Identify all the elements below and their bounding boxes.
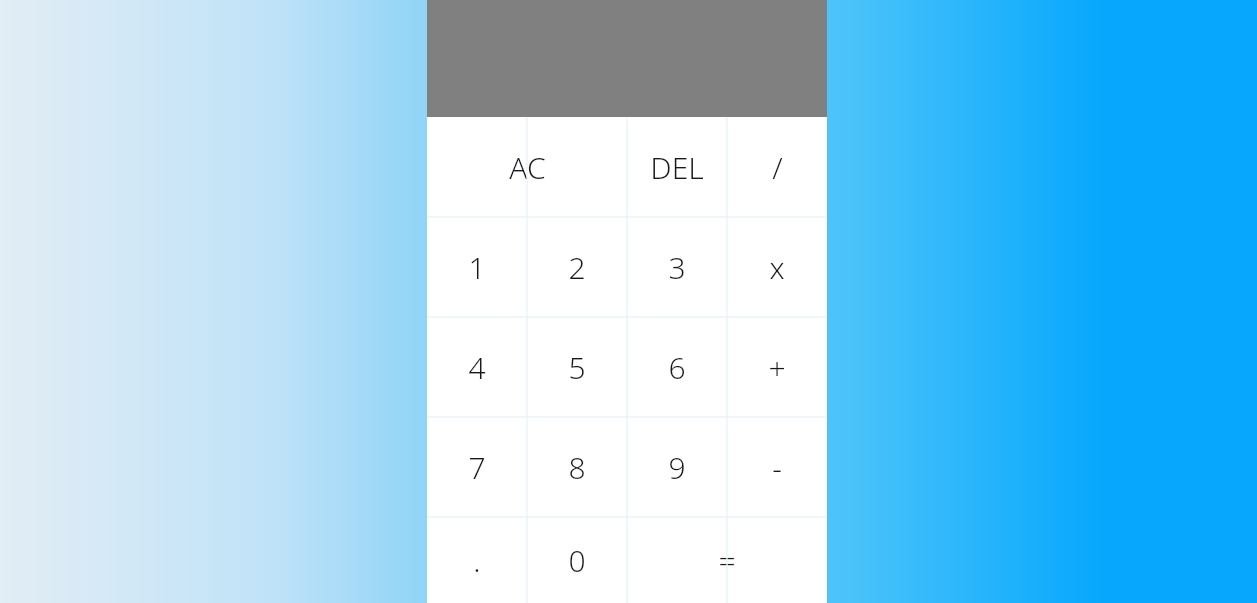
button[interactable]: AC bbox=[427, 117, 627, 217]
staticText: = bbox=[718, 540, 736, 581]
staticText: . bbox=[473, 540, 481, 581]
staticText: - bbox=[772, 447, 782, 488]
staticText: 2 bbox=[568, 247, 586, 288]
button[interactable]: 4 bbox=[427, 317, 527, 417]
button[interactable]: 8 bbox=[527, 417, 627, 517]
staticText: + bbox=[768, 347, 786, 388]
button[interactable]: = bbox=[627, 517, 827, 603]
button[interactable]: 1 bbox=[427, 217, 527, 317]
staticText: 4 bbox=[468, 347, 486, 388]
staticText: 8 bbox=[568, 447, 586, 488]
staticText: 0 bbox=[568, 540, 586, 581]
staticText: 9 bbox=[668, 447, 686, 488]
button[interactable]: 6 bbox=[627, 317, 727, 417]
staticText: 7 bbox=[468, 447, 486, 488]
button[interactable]: . bbox=[427, 517, 527, 603]
button[interactable]: 3 bbox=[627, 217, 727, 317]
button[interactable]: 0 bbox=[527, 517, 627, 603]
button[interactable]: 9 bbox=[627, 417, 727, 517]
staticText: 3 bbox=[668, 247, 686, 288]
staticText: 5 bbox=[568, 347, 586, 388]
button[interactable]: DEL bbox=[627, 117, 727, 217]
staticText: AC bbox=[509, 147, 546, 188]
button[interactable]: 2 bbox=[527, 217, 627, 317]
button[interactable]: - bbox=[727, 417, 827, 517]
button[interactable]: 7 bbox=[427, 417, 527, 517]
button[interactable]: + bbox=[727, 317, 827, 417]
staticText: / bbox=[772, 147, 783, 188]
button[interactable]: / bbox=[727, 117, 827, 217]
staticText: 1 bbox=[468, 247, 486, 288]
button[interactable]: x bbox=[727, 217, 827, 317]
button[interactable]: 5 bbox=[527, 317, 627, 417]
staticText: x bbox=[769, 247, 785, 288]
staticText: 6 bbox=[668, 347, 686, 388]
staticText: DEL bbox=[650, 147, 704, 188]
